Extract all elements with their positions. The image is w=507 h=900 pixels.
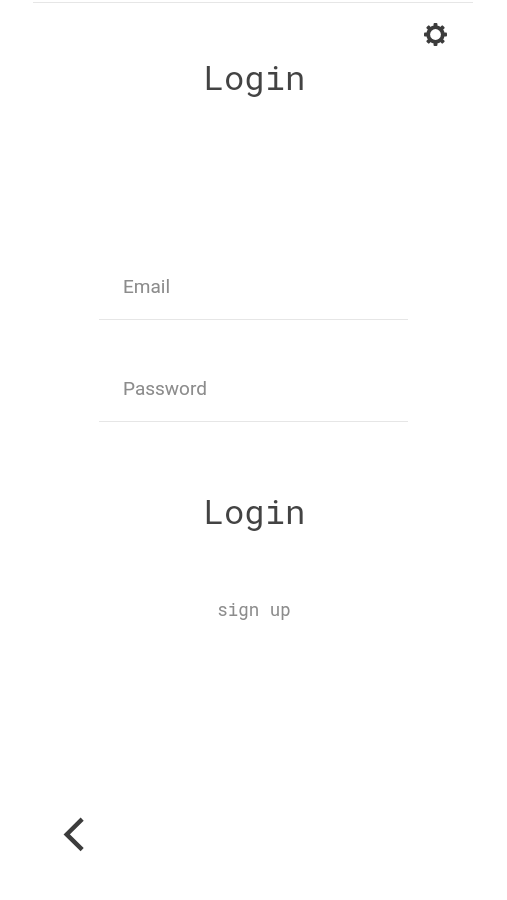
button[interactable]: Email (99, 263, 408, 323)
staticText: Login (203, 54, 306, 99)
staticText: Email (123, 275, 171, 297)
button[interactable]: sign up (190, 590, 317, 628)
button[interactable]: Back (50, 811, 98, 859)
button[interactable]: Login (99, 479, 408, 535)
staticText: Password (123, 377, 207, 399)
button[interactable]: Password (99, 365, 408, 425)
staticText: sign up (217, 598, 291, 621)
staticText: Login (203, 488, 306, 533)
button[interactable]: Settings (412, 11, 459, 58)
